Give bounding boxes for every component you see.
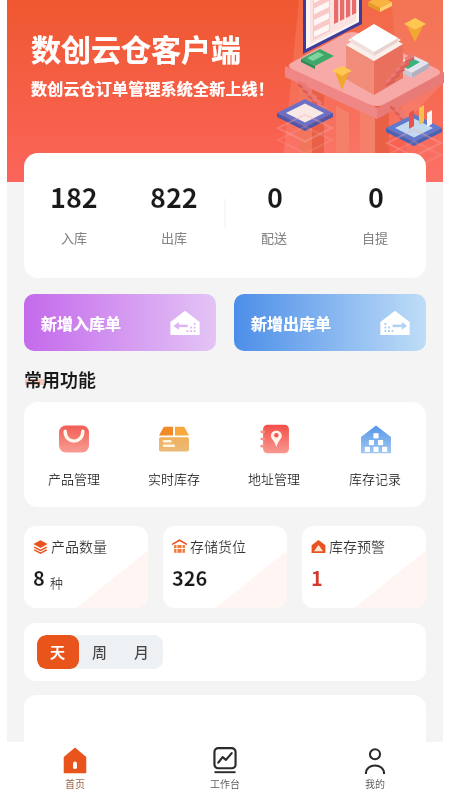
- button[interactable]: 产品管理: [24, 416, 124, 494]
- button[interactable]: 新增出库单: [234, 294, 426, 351]
- staticText: 月: [134, 641, 150, 663]
- button[interactable]: 周: [79, 635, 121, 669]
- staticText: 工作台: [210, 776, 240, 790]
- button[interactable]: 我的: [300, 742, 450, 800]
- staticText: 数创云仓客户端: [31, 26, 241, 69]
- button[interactable]: 822: [124, 153, 224, 278]
- button[interactable]: 产品数量: [24, 526, 148, 608]
- staticText: 数创云仓订单管理系统全新上线！: [31, 76, 275, 99]
- button[interactable]: 存储货位: [163, 526, 287, 608]
- staticText: 实时库存: [148, 469, 201, 488]
- staticText: 我的: [365, 776, 385, 790]
- button[interactable]: 月: [121, 635, 163, 669]
- staticText: 出库: [161, 228, 188, 247]
- staticText: 库存记录: [349, 469, 402, 488]
- button[interactable]: 库存记录: [325, 416, 426, 494]
- staticText: 8: [33, 563, 45, 592]
- button[interactable]: 新增入库单: [24, 294, 216, 351]
- staticText: 首页: [65, 776, 85, 790]
- staticText: 天: [50, 641, 66, 663]
- staticText: 周: [92, 641, 108, 663]
- staticText: 常用功能: [24, 366, 96, 392]
- staticText: 新增出库单: [251, 311, 332, 334]
- button[interactable]: 182: [24, 153, 124, 278]
- button[interactable]: 地址管理: [224, 416, 325, 494]
- button[interactable]: 0: [224, 153, 325, 278]
- staticText: 入库: [61, 228, 88, 247]
- button[interactable]: 0: [325, 153, 426, 278]
- button[interactable]: 工作台: [150, 742, 300, 800]
- staticText: 0: [368, 177, 384, 216]
- staticText: 326: [172, 563, 208, 592]
- staticText: 自提: [362, 228, 389, 247]
- staticText: 地址管理: [248, 469, 301, 488]
- staticText: 种: [50, 573, 64, 592]
- staticText: 0: [267, 177, 283, 216]
- staticText: 182: [50, 177, 98, 216]
- staticText: 产品数量: [51, 536, 107, 556]
- staticText: 1: [311, 563, 323, 592]
- staticText: 产品管理: [48, 469, 101, 488]
- button[interactable]: 库存预警: [302, 526, 426, 608]
- staticText: 存储货位: [190, 536, 246, 556]
- staticText: 822: [150, 177, 198, 216]
- button[interactable]: 首页: [0, 742, 150, 800]
- staticText: 库存预警: [329, 536, 385, 556]
- button[interactable]: 实时库存: [124, 416, 224, 494]
- staticText: 配送: [261, 228, 288, 247]
- staticText: 新增入库单: [41, 311, 122, 334]
- button[interactable]: 天: [37, 635, 79, 669]
